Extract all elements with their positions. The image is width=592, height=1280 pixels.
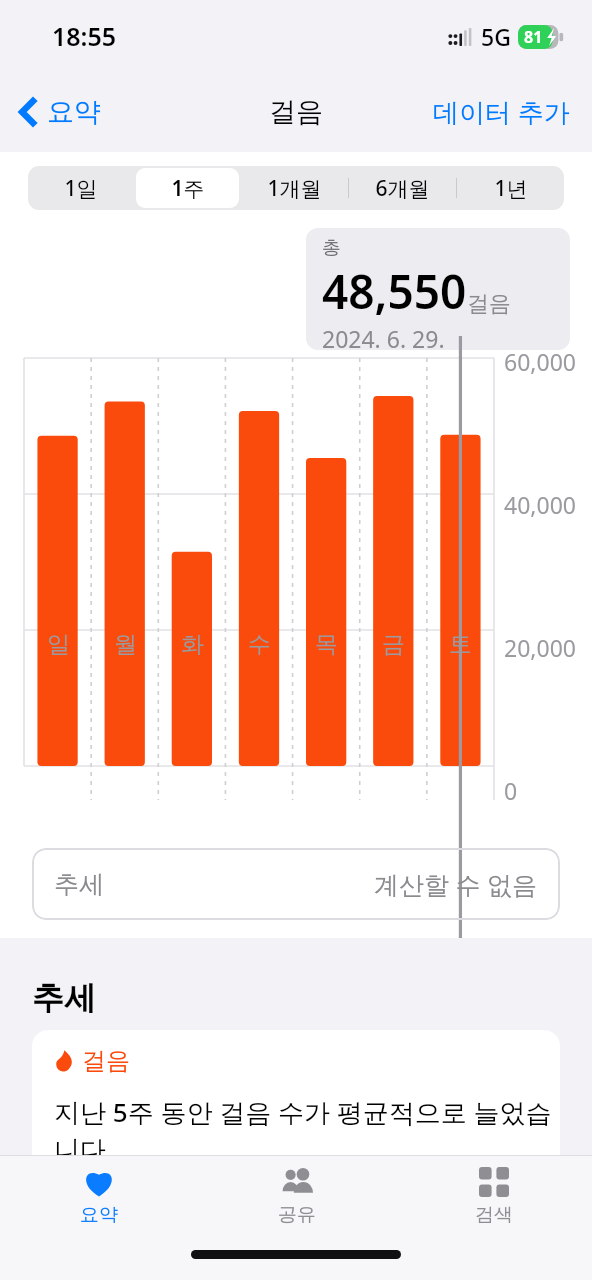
button[interactable]: 추세: [32, 848, 560, 920]
staticText: 1주: [171, 174, 205, 203]
staticText: 목: [315, 630, 338, 659]
staticText: 금: [382, 630, 405, 659]
staticText: 지난 5주 동안 걸음 수가 평균적으로 늘었습니다.: [54, 1094, 560, 1167]
staticText: 요약: [47, 95, 101, 129]
staticText: 계산할 수 없음: [374, 867, 538, 901]
staticText: 60,000: [504, 346, 576, 377]
staticText: 추세: [32, 978, 96, 1018]
staticText: 공유: [278, 1203, 316, 1227]
staticText: 추세: [54, 869, 104, 900]
staticText: 걸음: [467, 290, 511, 318]
button[interactable]: 1개월: [243, 168, 346, 208]
staticText: 5G: [481, 21, 511, 52]
staticText: 1개월: [267, 174, 322, 203]
staticText: 화: [181, 630, 204, 659]
staticText: 1년: [494, 174, 528, 203]
staticText: 걸음: [82, 1046, 130, 1076]
button[interactable]: 검색: [395, 1156, 592, 1238]
staticText: 20,000: [504, 632, 576, 663]
staticText: 6개월: [375, 174, 430, 203]
button[interactable]: 1주: [136, 168, 239, 208]
staticText: 1일: [64, 174, 98, 203]
staticText: 토: [449, 630, 472, 659]
staticText: 48,550: [322, 260, 467, 323]
staticText: 81: [524, 26, 543, 48]
staticText: 40,000: [504, 489, 576, 520]
button[interactable]: 걸음: [32, 1030, 560, 1170]
staticText: 2024. 6. 29.: [322, 323, 445, 350]
staticText: 총: [322, 236, 341, 260]
staticText: 0: [504, 775, 518, 806]
staticText: 18:55: [52, 19, 117, 53]
staticText: 걸음: [269, 95, 323, 129]
staticText: 요약: [80, 1203, 118, 1227]
staticText: 수: [248, 630, 271, 659]
button[interactable]: 공유: [198, 1156, 395, 1238]
staticText: 검색: [475, 1203, 513, 1227]
staticText: 월: [114, 630, 137, 659]
button[interactable]: 데이터 추가: [427, 88, 576, 136]
button[interactable]: 요약: [0, 1156, 198, 1238]
button[interactable]: 요약: [14, 89, 107, 135]
button[interactable]: 1일: [30, 168, 132, 208]
button[interactable]: 6개월: [351, 168, 454, 208]
staticText: 일: [47, 630, 70, 659]
button[interactable]: 1년: [459, 168, 562, 208]
